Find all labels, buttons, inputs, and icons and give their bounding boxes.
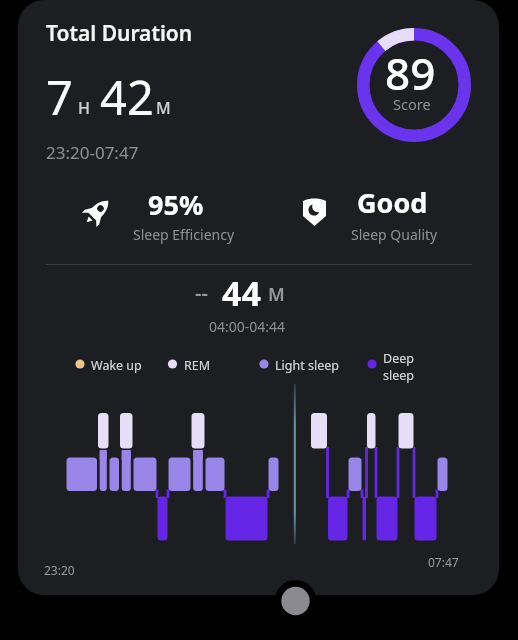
- staticText: 07:47: [428, 554, 459, 570]
- staticText: REM: [184, 357, 211, 374]
- staticText: M: [156, 97, 171, 119]
- button[interactable]: [82, 194, 116, 232]
- button[interactable]: [302, 196, 330, 230]
- staticText: H: [78, 97, 90, 119]
- staticText: M: [268, 282, 285, 307]
- staticText: 95%: [148, 186, 204, 223]
- staticText: 42: [100, 65, 154, 129]
- staticText: --: [195, 279, 208, 306]
- staticText: 89: [385, 43, 436, 103]
- button[interactable]: [357, 28, 471, 142]
- staticText: 23:20: [44, 562, 75, 578]
- staticText: Sleep Quality: [351, 225, 438, 244]
- staticText: Light sleep: [275, 357, 339, 374]
- staticText: Wake up: [91, 357, 142, 374]
- button[interactable]: [18, 0, 499, 595]
- staticText: Sleep Efficiency: [133, 225, 235, 244]
- staticText: 23:20-07:47: [46, 141, 139, 164]
- staticText: 44: [222, 270, 261, 316]
- staticText: Good: [357, 184, 428, 221]
- button[interactable]: [0, 0, 518, 640]
- staticText: Total Duration: [46, 19, 193, 48]
- staticText: 7: [46, 65, 73, 129]
- staticText: Score: [393, 94, 431, 114]
- staticText: 04:00-04:44: [209, 317, 286, 336]
- staticText: Deep sleep: [383, 350, 415, 384]
